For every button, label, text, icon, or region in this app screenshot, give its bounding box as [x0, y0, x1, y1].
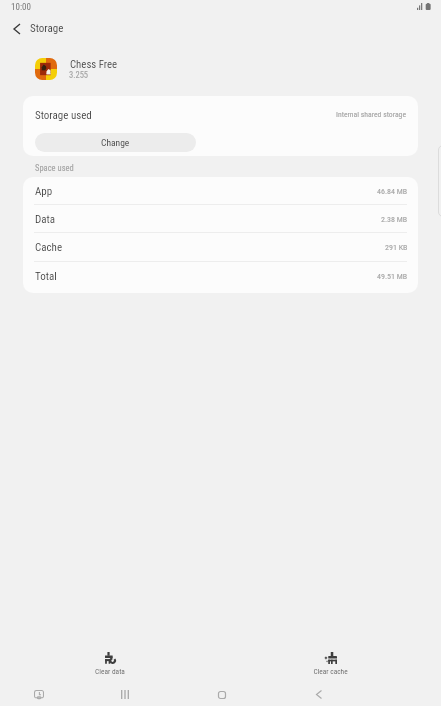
- staticText: App: [35, 185, 53, 198]
- staticText: Cache: [35, 241, 63, 254]
- staticText: 291 KB: [385, 243, 408, 252]
- staticText: Storage used: [35, 109, 92, 122]
- button[interactable]: Data: [23, 205, 418, 233]
- button[interactable]: Cache: [23, 233, 418, 262]
- button[interactable]: App: [23, 177, 418, 205]
- staticText: Chess Free: [70, 58, 118, 71]
- staticText: 49.51 MB: [377, 272, 408, 281]
- staticText: Clear data: [95, 667, 125, 676]
- staticText: 10:00: [11, 2, 31, 13]
- staticText: Data: [35, 213, 56, 226]
- button[interactable]: Back: [4, 16, 30, 42]
- staticText: Clear cache: [313, 667, 348, 676]
- button[interactable]: Clear data: [0, 651, 220, 676]
- button[interactable]: Change: [35, 133, 196, 152]
- staticText: Internal shared storage: [336, 110, 406, 119]
- button[interactable]: Total: [23, 262, 418, 290]
- button[interactable]: Clear cache: [220, 651, 441, 676]
- staticText: Space used: [35, 163, 74, 173]
- button[interactable]: Recent apps: [113, 683, 136, 706]
- button[interactable]: Home: [210, 683, 233, 706]
- staticText: 3.255: [69, 70, 89, 80]
- staticText: Total: [35, 270, 57, 283]
- button[interactable]: Back: [307, 683, 330, 706]
- button[interactable]: Screen timeout: [27, 683, 50, 706]
- staticText: Storage: [30, 22, 64, 35]
- staticText: Change: [101, 137, 130, 148]
- staticText: 2.38 MB: [381, 215, 408, 224]
- staticText: 46.84 MB: [377, 187, 408, 196]
